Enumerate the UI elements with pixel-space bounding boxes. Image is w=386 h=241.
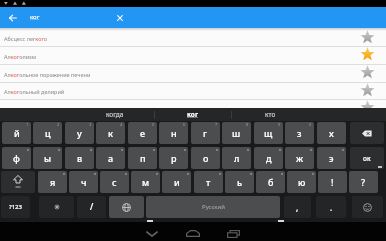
staticText: э <box>329 152 334 164</box>
button[interactable]: ц <box>33 122 62 144</box>
button[interactable]: ь <box>225 171 254 193</box>
button[interactable]: я <box>38 171 67 193</box>
button[interactable] <box>39 196 74 218</box>
staticText: и <box>174 176 180 188</box>
staticText: 8 <box>246 122 249 127</box>
button[interactable]: р <box>159 147 188 169</box>
button[interactable]: е <box>128 122 157 144</box>
staticText: / <box>90 201 94 213</box>
staticText: у <box>77 127 82 139</box>
button[interactable]: п <box>128 147 157 169</box>
button[interactable] <box>360 47 375 61</box>
staticText: ж <box>296 152 304 164</box>
button[interactable]: и <box>162 171 191 193</box>
button[interactable] <box>360 65 375 79</box>
staticText: о <box>203 152 209 164</box>
staticText: 5 <box>152 122 155 127</box>
staticText: р <box>171 152 177 164</box>
button[interactable]: к <box>96 122 125 144</box>
button[interactable]: щ <box>254 122 283 144</box>
staticText: 6 <box>183 122 186 127</box>
staticText: ! <box>331 176 334 188</box>
button[interactable]: . <box>316 196 346 218</box>
button[interactable] <box>1 171 35 193</box>
button[interactable]: с <box>100 171 129 193</box>
button[interactable]: д <box>254 147 283 169</box>
button[interactable]: в <box>65 147 94 169</box>
button[interactable]: ж <box>285 147 314 169</box>
button[interactable] <box>112 10 127 25</box>
staticText: ы <box>44 152 52 164</box>
button[interactable]: кто <box>240 108 300 121</box>
button[interactable]: ! <box>318 171 347 193</box>
staticText: ?123 <box>9 203 22 211</box>
staticText: з <box>297 127 302 139</box>
button[interactable]: т <box>194 171 223 193</box>
button[interactable] <box>360 83 375 97</box>
button[interactable]: з <box>285 122 314 144</box>
staticText: Русский <box>202 203 225 211</box>
staticText: ь <box>237 176 243 188</box>
button[interactable]: / <box>77 196 106 218</box>
staticText: х <box>329 127 334 139</box>
button[interactable]: ш <box>222 122 251 144</box>
staticText: 4 <box>120 122 123 127</box>
button[interactable] <box>223 226 243 241</box>
staticText: когда <box>106 110 124 119</box>
staticText: с <box>112 176 117 188</box>
button[interactable]: н <box>159 122 188 144</box>
staticText: б <box>268 176 274 188</box>
staticText: м <box>142 176 150 188</box>
button[interactable]: Алкоголизм <box>0 47 386 65</box>
button[interactable]: л <box>222 147 251 169</box>
staticText: Алкоголизм <box>4 53 36 60</box>
button[interactable]: й <box>2 122 31 144</box>
button[interactable]: Алкогольный синдром плода <box>0 100 386 118</box>
button[interactable]: э <box>317 147 346 169</box>
button[interactable] <box>352 196 383 218</box>
button[interactable]: х <box>317 122 346 144</box>
button[interactable]: ч <box>69 171 98 193</box>
button[interactable]: ? <box>349 171 378 193</box>
button[interactable]: Абсцесс легкого <box>0 29 386 47</box>
button[interactable]: Русский <box>146 196 280 218</box>
staticText: е <box>140 127 146 139</box>
button[interactable] <box>183 226 203 241</box>
staticText: 9 <box>278 122 281 127</box>
button[interactable]: Алкогольный делирий <box>0 82 386 100</box>
button[interactable]: б <box>256 171 285 193</box>
staticText: , <box>296 202 299 213</box>
staticText: г <box>203 127 208 139</box>
button[interactable]: г <box>191 122 220 144</box>
button[interactable]: Алкогольное поражение печени <box>0 65 386 83</box>
button[interactable]: ?123 <box>1 196 30 218</box>
button[interactable]: когда <box>85 108 145 121</box>
button[interactable]: ю <box>287 171 316 193</box>
button[interactable]: м <box>131 171 160 193</box>
button[interactable]: а <box>96 147 125 169</box>
button[interactable]: о <box>191 147 220 169</box>
button[interactable] <box>350 122 384 144</box>
button[interactable]: , <box>284 196 311 218</box>
staticText: й <box>14 127 20 139</box>
staticText: я <box>50 176 56 188</box>
button[interactable] <box>5 10 20 25</box>
button[interactable] <box>360 30 375 44</box>
button[interactable] <box>142 226 162 241</box>
button[interactable] <box>360 100 375 114</box>
staticText: п <box>140 152 146 164</box>
button[interactable]: ког <box>162 108 223 121</box>
staticText: ю <box>298 176 306 188</box>
staticText: 0 <box>309 122 312 127</box>
button[interactable]: ы <box>33 147 62 169</box>
button[interactable] <box>109 196 144 218</box>
button[interactable]: у <box>65 122 94 144</box>
staticText: 2 <box>57 122 60 127</box>
staticText: ч <box>81 176 87 188</box>
staticText: а <box>108 152 114 164</box>
staticText: к <box>108 127 114 139</box>
button[interactable]: ок <box>350 147 384 169</box>
button[interactable]: ког <box>30 13 40 21</box>
button[interactable]: ф <box>2 147 31 169</box>
staticText: ф <box>13 152 20 164</box>
